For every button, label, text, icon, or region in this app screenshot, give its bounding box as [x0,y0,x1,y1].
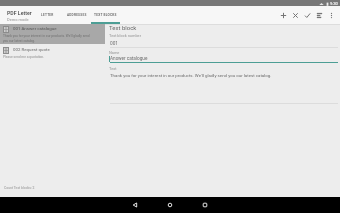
staticText: Thank you for your interest in our produ… [110,73,272,78]
staticText: Name [109,50,120,55]
staticText: 001 [110,41,118,47]
button[interactable]: 001 Answer catalogue [0,24,105,44]
staticText: TEXT BLOCKS [94,13,117,17]
button[interactable]: Save [301,6,313,24]
staticText: PDF Letter [7,10,32,16]
staticText: 9:30 [330,1,338,6]
button[interactable]: Recents [198,198,212,212]
staticText: Text [109,66,117,71]
button[interactable]: TEXT BLOCKS [91,6,120,24]
button[interactable]: LETTER [33,6,62,24]
staticText: Count Text blocks: 2 [4,186,35,190]
button[interactable]: More options [325,6,337,24]
button[interactable]: Add [277,6,289,24]
staticText: Demo mode [7,17,29,22]
staticText: Text block [109,24,137,31]
staticText: Text block number [109,33,141,38]
button[interactable]: ADDRESSES [62,6,91,24]
button[interactable]: Back [128,198,142,212]
staticText: LETTER [41,13,54,17]
staticText: 002 Request quote [13,47,50,52]
button[interactable]: Home [163,198,177,212]
staticText: Please send me a quotation. [3,55,95,59]
button[interactable]: 002 Request quote [0,45,105,65]
staticText: Thank you for your interest in our produ… [3,34,95,42]
button[interactable]: Sort [313,6,325,24]
staticText: ADDRESSES [67,13,87,17]
button[interactable]: Cancel [289,6,301,24]
staticText: Answer catalogue [110,56,148,62]
staticText: 001 Answer catalogue [13,26,57,31]
